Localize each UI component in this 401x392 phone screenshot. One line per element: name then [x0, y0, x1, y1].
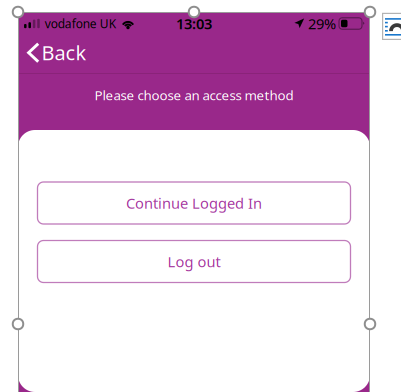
staticText: vodafone UK [45, 15, 116, 31]
button[interactable]: Log out [37, 240, 350, 282]
button[interactable]: Back [27, 32, 99, 73]
staticText: Please choose an access method [94, 86, 293, 104]
staticText: Log out [167, 252, 220, 271]
staticText: Back [41, 39, 86, 66]
staticText: 29% [308, 14, 336, 33]
staticText: 13:03 [176, 14, 212, 33]
staticText: Continue Logged In [126, 193, 262, 213]
button[interactable]: Continue Logged In [37, 182, 350, 224]
